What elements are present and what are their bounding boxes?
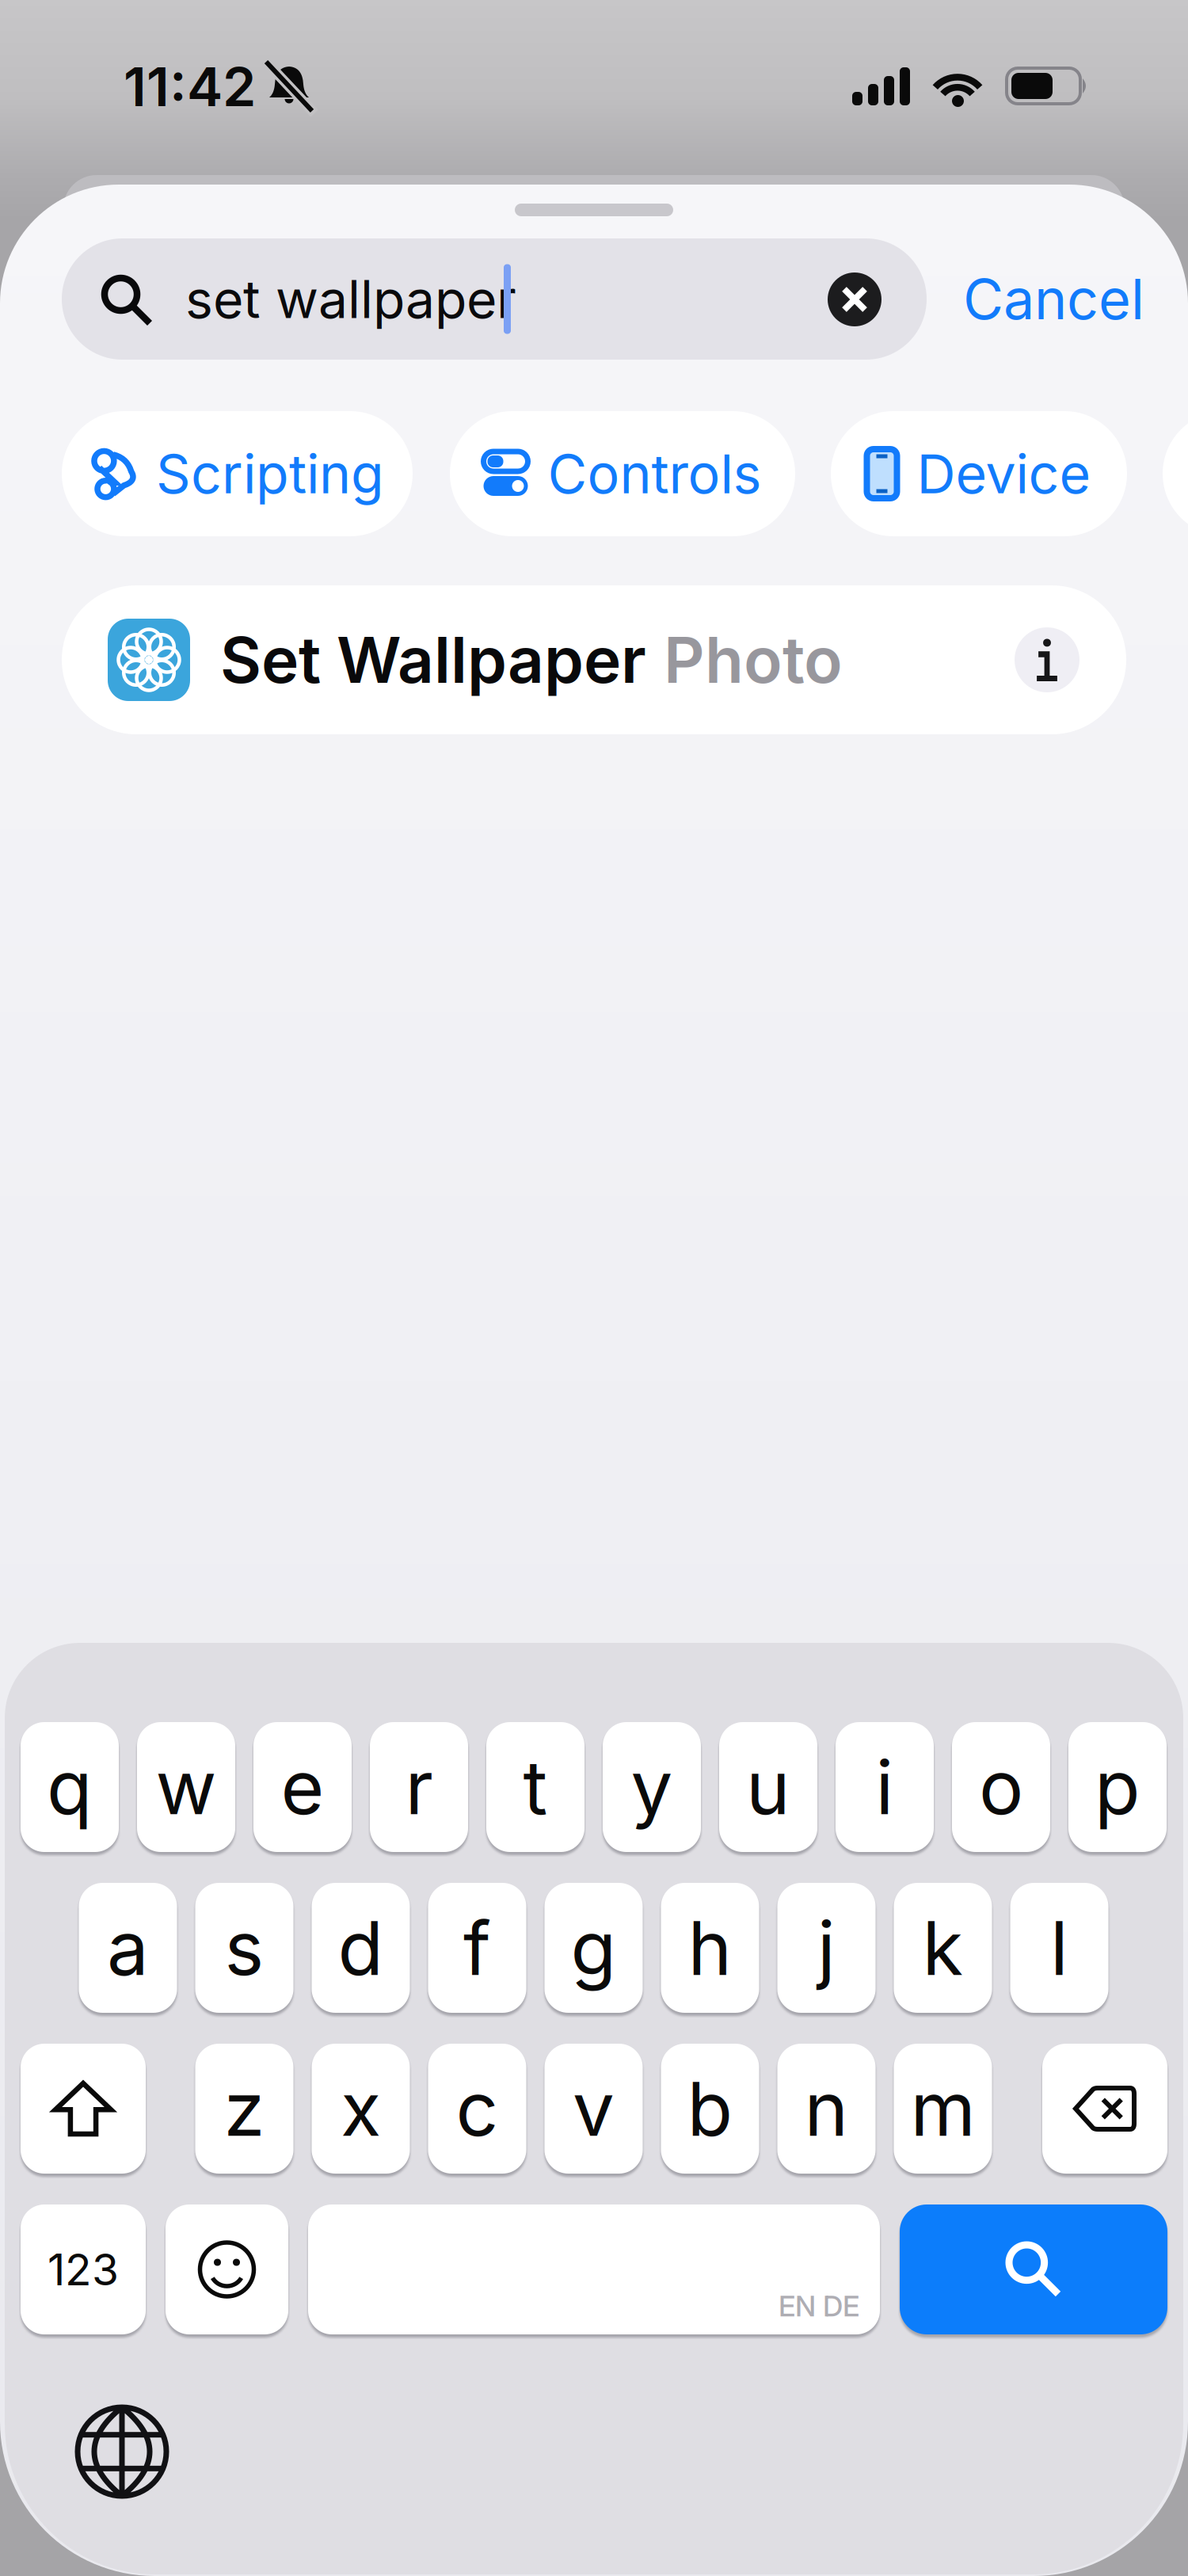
button[interactable]: j: [777, 1883, 876, 2013]
staticText: Scripting: [156, 441, 384, 506]
staticText: k: [922, 1903, 963, 1993]
staticText: b: [687, 2064, 733, 2154]
button[interactable]: Device: [831, 411, 1127, 536]
button[interactable]: f: [428, 1883, 526, 2013]
staticText: i: [876, 1742, 894, 1832]
button[interactable]: d: [312, 1883, 410, 2013]
button[interactable]: e: [253, 1722, 352, 1852]
staticText: x: [341, 2064, 381, 2154]
button[interactable]: b: [661, 2044, 759, 2174]
staticText: y: [631, 1742, 673, 1832]
staticText: 11:42: [124, 54, 256, 119]
staticText: l: [1050, 1903, 1068, 1993]
button[interactable]: Emoji: [166, 2204, 288, 2334]
button[interactable]: v: [544, 2044, 643, 2174]
button[interactable]: a: [79, 1883, 177, 2013]
staticText: p: [1095, 1742, 1140, 1832]
staticText: r: [405, 1742, 433, 1832]
staticText: d: [338, 1903, 384, 1993]
button[interactable]: o: [952, 1722, 1050, 1852]
staticText: g: [571, 1903, 617, 1993]
staticText: s: [225, 1903, 264, 1993]
button[interactable]: r: [370, 1722, 468, 1852]
staticText: f: [463, 1903, 491, 1993]
staticText: Device: [917, 441, 1091, 506]
button[interactable]: p: [1068, 1722, 1167, 1852]
button[interactable]: s: [195, 1883, 293, 2013]
staticText: j: [817, 1903, 836, 1993]
button[interactable]: Scripting: [62, 411, 413, 536]
staticText: Set Wallpaper: [220, 622, 646, 698]
staticText: set wallpaper: [185, 267, 516, 331]
staticText: Photo: [664, 622, 843, 698]
staticText: q: [47, 1742, 93, 1832]
button[interactable]: m: [894, 2044, 992, 2174]
button[interactable]: w: [137, 1722, 235, 1852]
button[interactable]: Space: [308, 2204, 880, 2334]
button[interactable]: Shift: [21, 2044, 146, 2174]
button[interactable]: Delete: [1042, 2044, 1167, 2174]
staticText: Cancel: [963, 266, 1144, 333]
button[interactable]: Set Wallpaper: [62, 585, 1126, 734]
button[interactable]: Numbers: [21, 2204, 146, 2334]
staticText: Controls: [548, 441, 762, 506]
button[interactable]: z: [195, 2044, 293, 2174]
button[interactable]: Next keyboard: [78, 2407, 166, 2496]
staticText: v: [573, 2064, 615, 2154]
button[interactable]: k: [894, 1883, 992, 2013]
staticText: o: [979, 1742, 1023, 1832]
staticText: u: [746, 1742, 790, 1832]
button[interactable]: t: [486, 1722, 584, 1852]
button[interactable]: Controls: [450, 411, 795, 536]
staticText: EN DE: [779, 2289, 859, 2323]
staticText: z: [224, 2064, 265, 2154]
staticText: t: [523, 1742, 548, 1832]
button[interactable]: g: [544, 1883, 643, 2013]
staticText: n: [804, 2064, 849, 2154]
button[interactable]: Search: [900, 2204, 1167, 2334]
button[interactable]: Clear text: [828, 272, 881, 326]
button[interactable]: n: [777, 2044, 876, 2174]
button[interactable]: u: [719, 1722, 817, 1852]
button[interactable]: i: [836, 1722, 934, 1852]
staticText: h: [688, 1903, 732, 1993]
staticText: a: [107, 1903, 149, 1993]
button[interactable]: Cancel: [963, 238, 1144, 360]
button[interactable]: l: [1010, 1883, 1108, 2013]
staticText: e: [281, 1742, 324, 1832]
button[interactable]: x: [312, 2044, 410, 2174]
staticText: c: [456, 2064, 499, 2154]
button[interactable]: h: [661, 1883, 759, 2013]
staticText: 123: [48, 2243, 119, 2296]
button[interactable]: q: [21, 1722, 119, 1852]
button[interactable]: More categories: [1163, 411, 1188, 536]
button[interactable]: y: [603, 1722, 701, 1852]
staticText: m: [910, 2064, 975, 2154]
staticText: w: [156, 1742, 217, 1832]
button[interactable]: c: [428, 2044, 526, 2174]
button[interactable]: Search: [62, 238, 927, 360]
